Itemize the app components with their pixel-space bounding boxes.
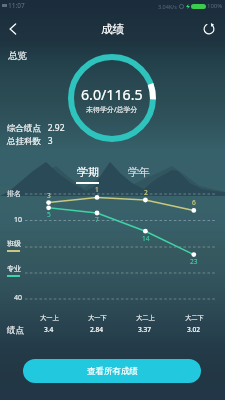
staticText: 3.37 (138, 325, 152, 334)
button[interactable]: Back (1, 17, 25, 41)
button[interactable]: 查看所有成绩 (23, 359, 201, 383)
staticText: 6 (192, 198, 196, 207)
staticText: 7 (95, 215, 99, 224)
staticText: 3.04K/s (158, 3, 177, 10)
button[interactable]: Refresh (199, 19, 219, 39)
staticText: 大二上 (136, 314, 155, 322)
staticText: 40 (14, 293, 23, 303)
staticText: 大一下 (88, 314, 107, 322)
staticText: 大一上 (40, 314, 59, 322)
staticText: 专业 (7, 264, 21, 273)
staticText: 绩点 (7, 325, 24, 336)
staticText: 14 (142, 234, 150, 243)
staticText: 23 (190, 257, 198, 266)
staticText: 学期 (77, 165, 99, 179)
staticText: 总览 (8, 50, 27, 62)
staticText: 总挂科数 3 (7, 135, 53, 147)
staticText: 2 (144, 188, 148, 197)
staticText: 查看所有成绩 (87, 366, 138, 377)
staticText: 排名 (7, 189, 21, 198)
staticText: 3 (47, 191, 51, 200)
staticText: 6.0/116.5 (81, 85, 143, 104)
staticText: 大二下 (185, 314, 204, 322)
staticText: 班级 (7, 239, 21, 248)
staticText: 5 (47, 210, 51, 219)
staticText: 未得学分/总学分 (86, 105, 138, 115)
staticText: 综合绩点 2.92 (7, 122, 65, 134)
staticText: 学年 (128, 165, 150, 179)
staticText: 10 (14, 215, 23, 225)
staticText: 3.4 (44, 325, 54, 334)
button[interactable]: 学期 (69, 163, 106, 186)
staticText: 2.84 (90, 325, 104, 334)
staticText: 100% (207, 2, 223, 10)
button[interactable]: 学年 (120, 163, 157, 186)
staticText: 3.02 (187, 325, 201, 334)
staticText: 成绩 (101, 22, 124, 36)
staticText: 1 (95, 185, 99, 194)
staticText: 11:07 (8, 1, 25, 10)
